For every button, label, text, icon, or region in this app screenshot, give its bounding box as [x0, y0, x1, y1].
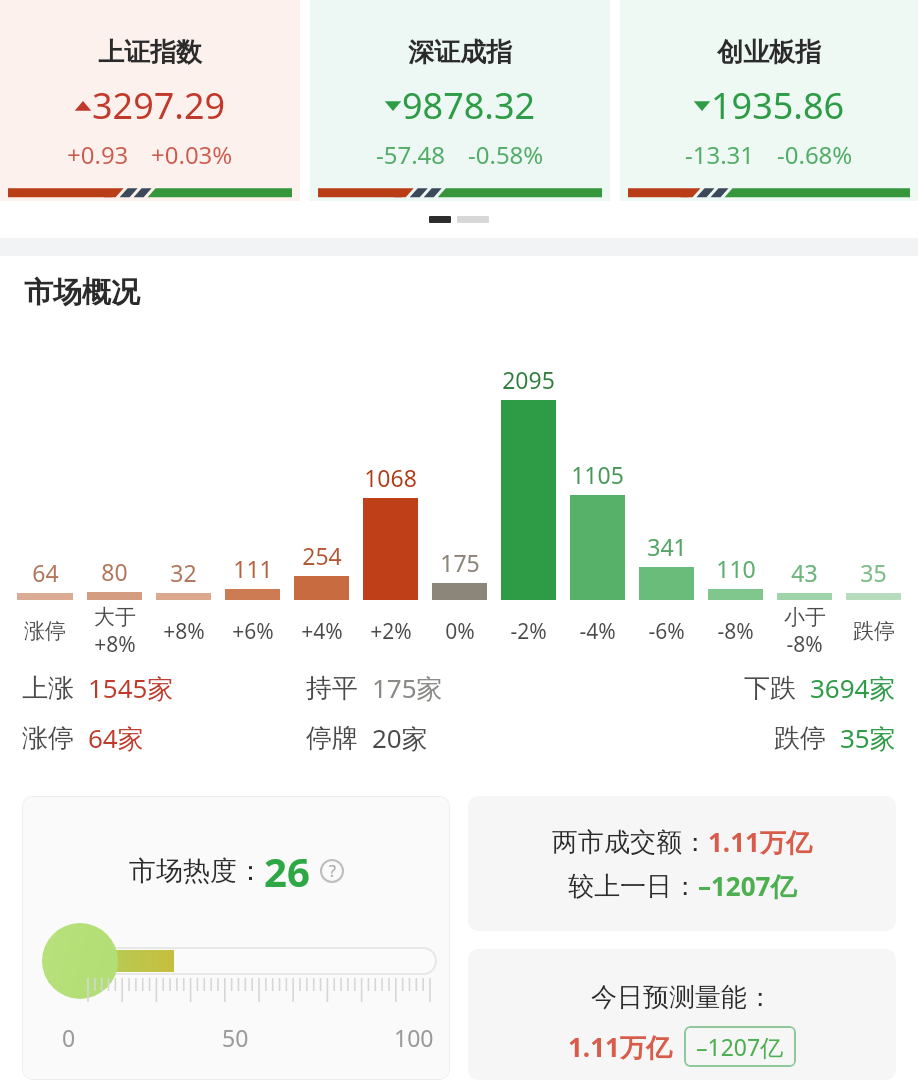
button[interactable]: 深证成指: [310, 0, 610, 201]
staticText: 1.11万亿: [568, 1029, 672, 1065]
button[interactable]: 254: [287, 540, 356, 600]
button[interactable]: 80: [80, 556, 149, 600]
staticText: -0.58%: [468, 138, 544, 171]
staticText: 较上一日：: [568, 870, 698, 903]
staticText: 80: [101, 556, 128, 587]
staticText: +2%: [370, 617, 412, 646]
staticText: –1207亿: [698, 868, 797, 904]
staticText: 上证指数: [98, 36, 202, 69]
staticText: 市场概况: [24, 274, 140, 311]
staticText: 大于: [94, 604, 136, 630]
staticText: +4%: [301, 617, 343, 646]
staticText: -8%: [786, 630, 823, 659]
staticText: 今日预测量能：: [591, 981, 773, 1014]
button[interactable]: 64: [10, 557, 80, 600]
staticText: 深证成指: [408, 36, 512, 69]
staticText: -4%: [579, 617, 616, 646]
staticText: +6%: [232, 617, 274, 646]
button[interactable]: 341: [632, 531, 701, 600]
staticText: 35家: [840, 720, 896, 756]
staticText: 0: [62, 1022, 76, 1053]
staticText: -13.31: [685, 138, 755, 171]
button[interactable]: 35: [839, 557, 908, 600]
button[interactable]: 111: [218, 553, 287, 600]
staticText: 26: [264, 844, 310, 898]
staticText: 50: [222, 1022, 249, 1053]
staticText: -8%: [717, 617, 754, 646]
staticText: 两市成交额：: [552, 826, 708, 859]
staticText: -0.68%: [777, 138, 853, 171]
button[interactable]: 1068: [356, 462, 425, 600]
button[interactable]: 43: [770, 557, 839, 600]
staticText: 小于: [784, 604, 826, 630]
staticText: 1105: [571, 459, 624, 490]
staticText: 0%: [445, 617, 475, 646]
staticText: -57.48: [376, 138, 446, 171]
staticText: +8%: [163, 617, 205, 646]
staticText: 涨停: [24, 618, 66, 644]
staticText: –1207亿: [696, 1031, 784, 1062]
button[interactable]: 32: [149, 557, 218, 600]
button[interactable]: 1105: [563, 459, 632, 600]
staticText: 1935.86: [711, 81, 845, 130]
staticText: 64家: [88, 720, 144, 756]
staticText: 创业板指: [717, 36, 821, 69]
staticText: 111: [233, 553, 273, 584]
staticText: 3297.29: [92, 81, 226, 130]
staticText: 上涨: [22, 672, 74, 705]
button[interactable]: 上证指数: [0, 0, 300, 201]
button[interactable]: 市场热度：: [22, 796, 450, 1080]
staticText: 341: [647, 531, 687, 562]
staticText: +0.03%: [151, 138, 233, 171]
staticText: 1068: [364, 462, 417, 493]
button[interactable]: 175: [425, 547, 494, 600]
staticText: 涨停: [22, 722, 74, 755]
staticText: 持平: [306, 672, 358, 705]
staticText: 1.11万亿: [708, 824, 812, 860]
button[interactable]: 帮助: [320, 859, 344, 883]
button[interactable]: 创业板指: [620, 0, 918, 201]
staticText: 跌停: [853, 618, 895, 644]
button[interactable]: 2095: [494, 364, 563, 600]
staticText: 64: [32, 557, 59, 588]
staticText: 9878.32: [402, 81, 536, 130]
button[interactable]: 两市成交额：: [468, 796, 896, 931]
staticText: 停牌: [306, 722, 358, 755]
staticText: 254: [302, 540, 342, 571]
staticText: 跌停: [774, 722, 826, 755]
staticText: +0.93: [67, 138, 129, 171]
staticText: -2%: [510, 617, 547, 646]
staticText: 1545家: [88, 670, 174, 706]
staticText: 市场热度：: [129, 854, 264, 888]
staticText: +8%: [94, 630, 136, 659]
staticText: 100: [394, 1022, 434, 1053]
staticText: 35: [860, 557, 887, 588]
staticText: -6%: [648, 617, 685, 646]
staticText: 20家: [372, 720, 428, 756]
button[interactable]: 110: [701, 553, 770, 600]
staticText: 下跌: [744, 672, 796, 705]
staticText: 43: [791, 557, 818, 588]
staticText: 175家: [372, 670, 443, 706]
staticText: 2095: [502, 364, 555, 395]
staticText: ?: [329, 860, 336, 882]
button[interactable]: 今日预测量能：: [468, 949, 896, 1080]
staticText: 110: [716, 553, 756, 584]
staticText: 32: [170, 557, 197, 588]
staticText: 3694家: [810, 670, 896, 706]
staticText: 175: [440, 547, 480, 578]
